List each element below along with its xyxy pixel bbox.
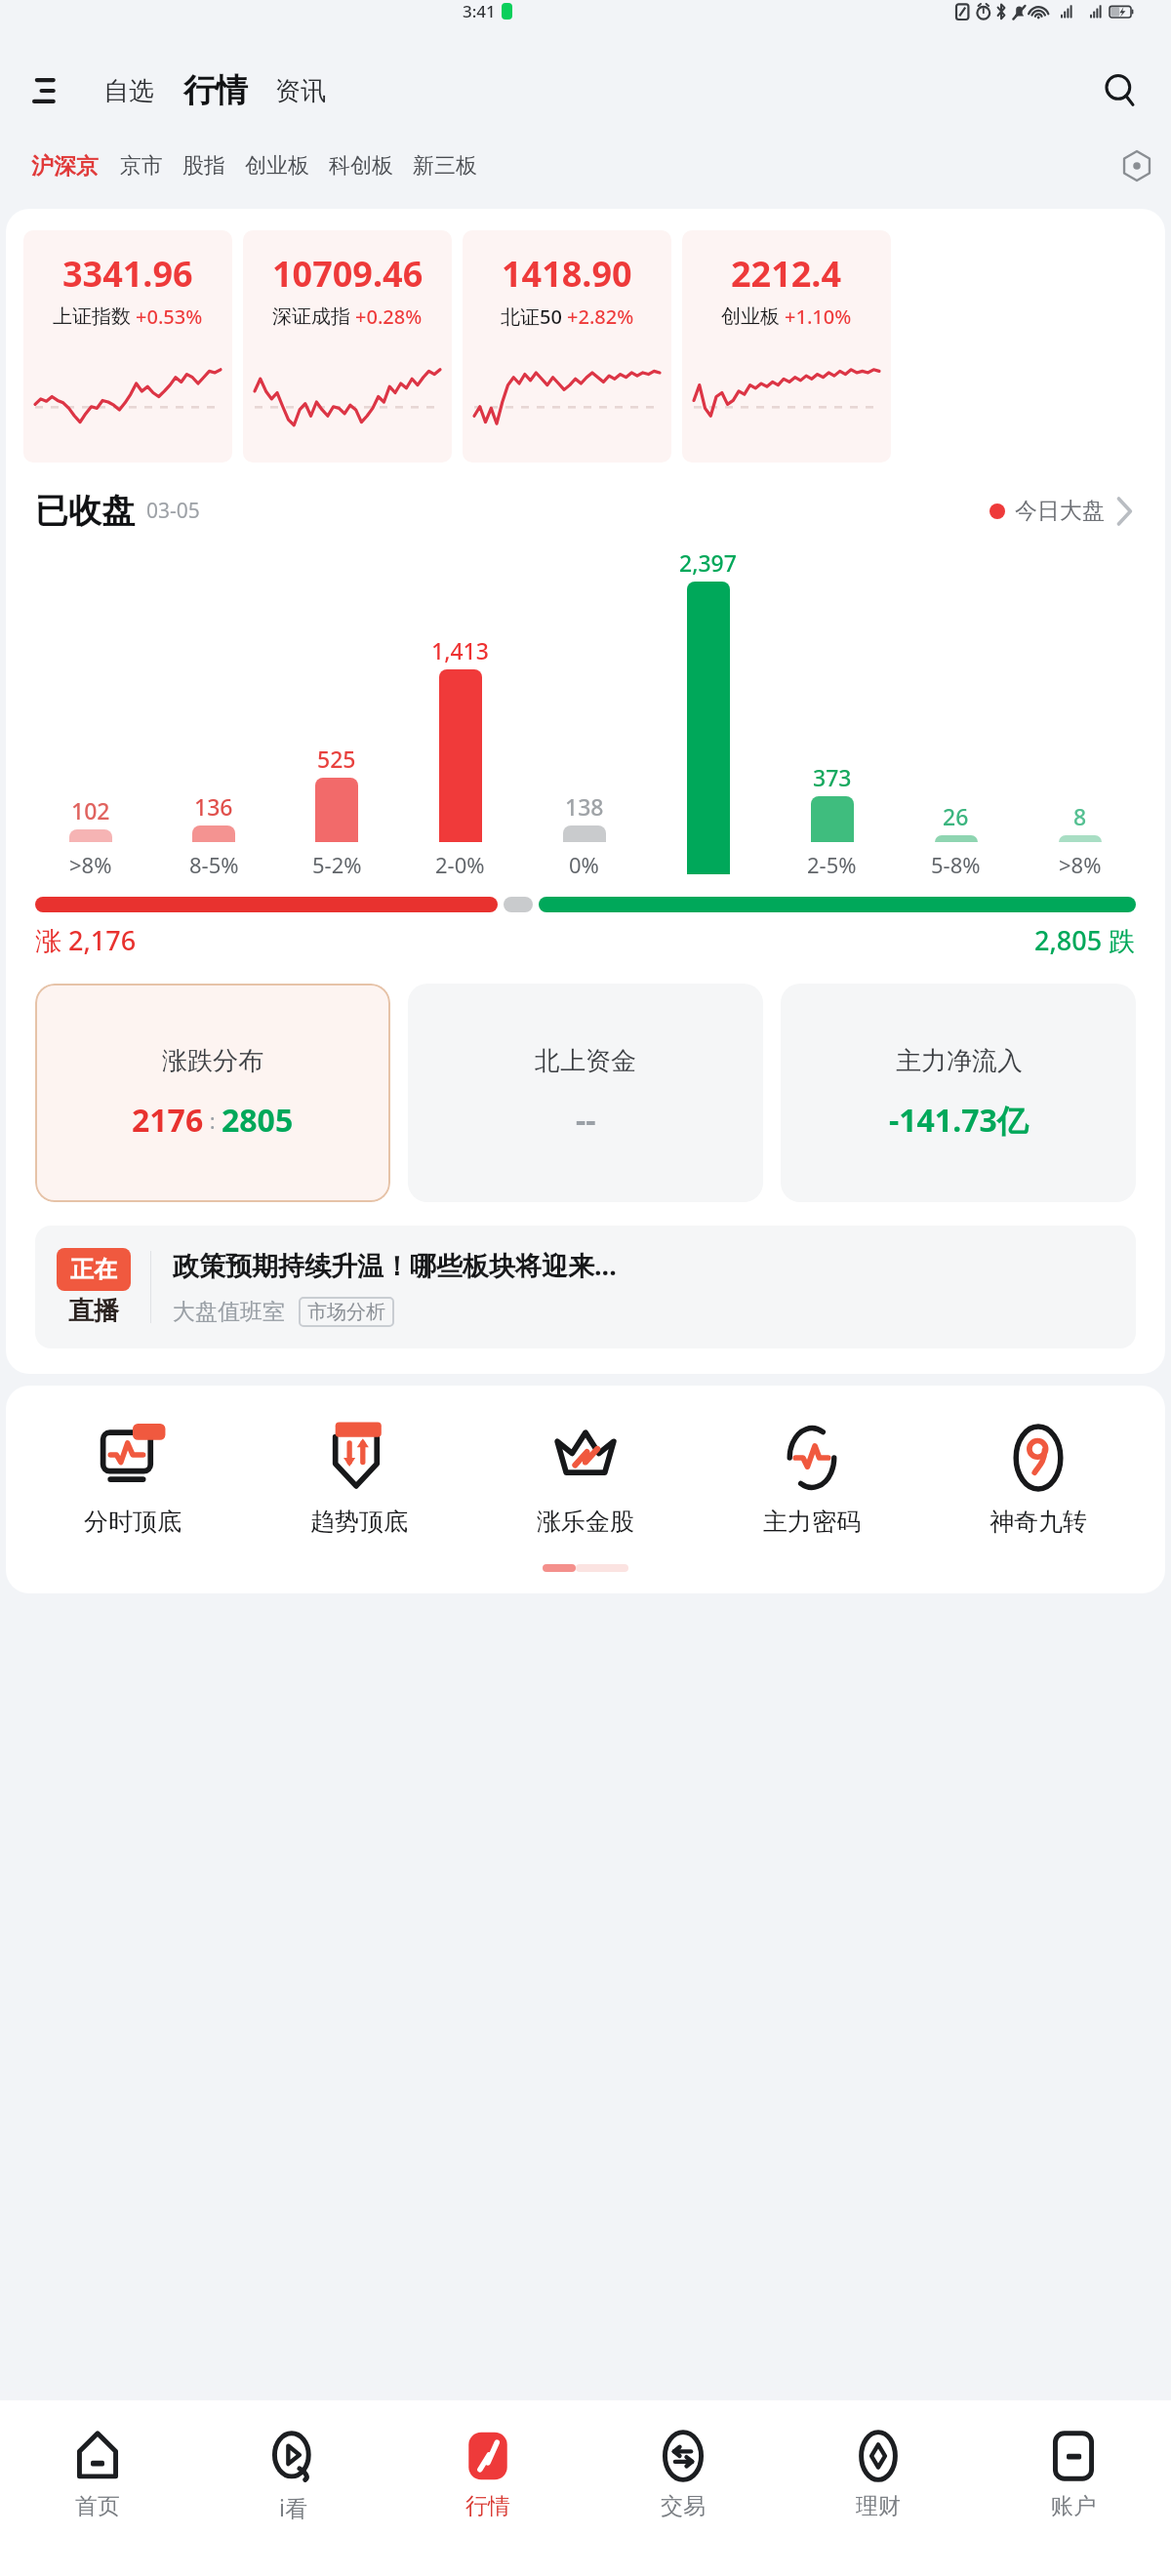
button[interactable]: 资讯 (271, 75, 330, 107)
staticText: 北证50 (501, 303, 562, 330)
staticText: 2,397 (679, 547, 737, 578)
staticText: 今日大盘 (1015, 497, 1105, 525)
button[interactable]: 京市 (112, 146, 171, 185)
staticText: 8 (1073, 801, 1087, 831)
staticText: 市场分析 (307, 1300, 385, 1324)
staticText: 03-05 (146, 497, 200, 525)
staticText: 京市 (120, 152, 163, 180)
staticText: >8% (1059, 850, 1102, 879)
staticText: 8-5% (189, 850, 239, 879)
staticText: 北上资金 (535, 1045, 636, 1077)
button[interactable]: 主力净流入 (781, 984, 1136, 1202)
staticText: 分时顶底 (84, 1507, 182, 1537)
button[interactable]: 神奇九转 (925, 1415, 1151, 1543)
staticText: 交易 (661, 2492, 706, 2520)
staticText: +0.28% (355, 303, 423, 330)
staticText: i看 (279, 2492, 307, 2522)
button[interactable]: 分时顶底 (20, 1415, 246, 1543)
staticText: 1418.90 (502, 250, 632, 298)
staticText: 正在 (70, 1255, 117, 1284)
button[interactable]: 今日大盘 (986, 491, 1136, 531)
staticText: 373 (813, 762, 852, 792)
staticText: -141.73亿 (889, 1099, 1029, 1142)
staticText: 138 (565, 791, 604, 822)
button[interactable]: Menu (23, 65, 74, 116)
staticText: 科创板 (329, 152, 393, 180)
staticText: 2805 (222, 1099, 294, 1142)
staticText: 2176 (132, 1099, 204, 1142)
staticText: 趋势顶底 (310, 1507, 408, 1537)
staticText: : (204, 1106, 222, 1135)
button[interactable]: Search (1093, 63, 1148, 118)
staticText: 5-8% (931, 850, 981, 879)
button[interactable]: 1418.90 (463, 230, 671, 463)
button[interactable]: 涨乐金股 (472, 1415, 699, 1543)
button[interactable]: 10709.46 (243, 230, 452, 463)
button[interactable]: 2212.4 (682, 230, 891, 463)
staticText: 新三板 (413, 152, 477, 180)
button[interactable]: 行情 (180, 70, 252, 111)
staticText: 政策预期持续升温！哪些板块将迎来... (173, 1247, 617, 1283)
staticText: 行情 (465, 2492, 510, 2520)
button[interactable]: 科创板 (321, 146, 401, 185)
button[interactable]: 股指 (175, 146, 233, 185)
button[interactable]: 涨跌分布 (35, 984, 390, 1202)
staticText: 创业板 (245, 152, 309, 180)
button[interactable]: 交易 (585, 2424, 781, 2524)
staticText: 创业板 (721, 304, 780, 329)
staticText: 主力净流入 (896, 1045, 1023, 1077)
staticText: 3341.96 (62, 250, 193, 298)
button[interactable]: 3341.96 (23, 230, 232, 463)
staticText: 涨 2,176 (35, 922, 137, 958)
button[interactable]: 创业板 (237, 146, 317, 185)
staticText: 股指 (182, 152, 225, 180)
button[interactable]: 首页 (0, 2424, 195, 2524)
button[interactable]: 北上资金 (408, 984, 763, 1202)
staticText: +0.53% (136, 303, 203, 330)
staticText: 主力密码 (763, 1507, 861, 1537)
staticText: 已收盘 (35, 490, 135, 532)
staticText: 账户 (1051, 2492, 1096, 2520)
staticText: 2,805 跌 (1034, 922, 1136, 958)
staticText: 525 (317, 744, 356, 774)
staticText: +2.82% (567, 303, 634, 330)
button[interactable]: 账户 (976, 2424, 1171, 2524)
staticText: 2-5% (807, 850, 857, 879)
button[interactable]: 行情 (390, 2424, 585, 2524)
button[interactable]: 自选 (100, 75, 158, 107)
staticText: -- (576, 1099, 596, 1142)
staticText: 神奇九转 (989, 1507, 1087, 1537)
staticText: 涨跌分布 (162, 1045, 263, 1077)
staticText: 26 (943, 801, 969, 831)
button[interactable]: 理财 (781, 2424, 976, 2524)
staticText: >8% (69, 850, 112, 879)
button[interactable]: More categories (1103, 135, 1171, 197)
staticText: 理财 (856, 2492, 901, 2520)
staticText: 102 (71, 795, 110, 825)
button[interactable]: 沪深京 (23, 146, 106, 186)
button[interactable]: 正在 (35, 1226, 1136, 1348)
staticText: +1.10% (785, 303, 852, 330)
staticText: 上证指数 (53, 304, 131, 329)
staticText: 3:41 (463, 0, 496, 22)
staticText: 沪深京 (31, 152, 99, 181)
staticText: 涨乐金股 (537, 1507, 634, 1537)
button[interactable]: 趋势顶底 (246, 1415, 472, 1543)
staticText: 首页 (75, 2492, 120, 2520)
staticText: 行情 (183, 70, 248, 111)
staticText: 136 (194, 791, 233, 822)
staticText: 5-2% (312, 850, 362, 879)
staticText: 大盘值班室 (173, 1298, 285, 1326)
staticText: 10709.46 (272, 250, 424, 298)
staticText: 2212.4 (731, 250, 842, 298)
staticText: 直播 (68, 1295, 119, 1327)
staticText: 自选 (103, 75, 154, 107)
button[interactable]: 新三板 (405, 146, 485, 185)
staticText: 深证成指 (272, 304, 350, 329)
staticText: 2-0% (435, 850, 485, 879)
staticText: 0% (569, 850, 599, 879)
button[interactable]: 主力密码 (699, 1415, 925, 1543)
staticText: 资讯 (275, 75, 326, 107)
staticText: 1,413 (431, 635, 489, 665)
button[interactable]: i看 (195, 2424, 390, 2526)
